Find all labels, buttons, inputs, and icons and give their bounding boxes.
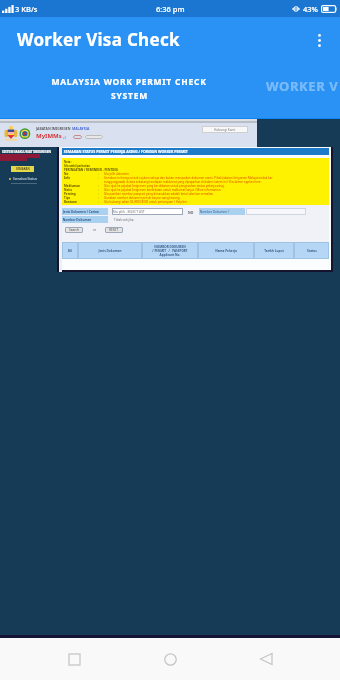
staticText: : bbox=[98, 196, 99, 200]
staticText: tanggungjawab di atas sebarang kesilapan… bbox=[104, 180, 262, 184]
staticText: Sila ambil perhatian bbox=[64, 164, 90, 168]
staticText: Sila pastikan nombor passport yang dimas… bbox=[104, 192, 214, 196]
staticText: SYSTEM bbox=[111, 90, 148, 102]
staticText: : bbox=[98, 200, 99, 204]
staticText: : bbox=[98, 172, 99, 176]
staticText: WORKER V bbox=[266, 77, 339, 95]
button[interactable]: Sila pilih - SELECT LIST bbox=[112, 208, 183, 215]
staticText: Status bbox=[307, 249, 317, 253]
staticText: 3 KB/s bbox=[15, 4, 38, 14]
button[interactable]: Search bbox=[65, 227, 83, 233]
staticText: MALAYSIA bbox=[72, 126, 90, 131]
staticText: Jenis Dokumen / Carian bbox=[62, 210, 99, 214]
staticText: v2 bbox=[62, 136, 67, 140]
staticText: Tidak sah jika bbox=[114, 218, 134, 222]
staticText: RESET bbox=[109, 228, 119, 232]
staticText: Bil bbox=[68, 249, 72, 253]
staticText: NO bbox=[188, 210, 194, 214]
staticText: 6:36 pm bbox=[156, 4, 185, 14]
staticText: Nombor Dokumen / bbox=[199, 210, 229, 214]
staticText: Jenis Dokumen bbox=[98, 249, 122, 253]
staticText: Sila pilih - SELECT LIST bbox=[112, 210, 145, 214]
staticText: Sila rujuk ke pejabat Imigresen yang ber… bbox=[104, 184, 225, 188]
staticText: Nota : bbox=[64, 160, 72, 164]
staticText: Sila rujuk ke pejabat Imigresen berdekat… bbox=[104, 188, 222, 192]
staticText: Worker Visa Check bbox=[17, 28, 180, 51]
staticText: Info bbox=[64, 176, 71, 180]
staticText: Tips bbox=[64, 196, 71, 200]
staticText: 43% bbox=[303, 4, 318, 14]
staticText: Makluman bbox=[64, 184, 81, 188]
staticText: Nama Pekerja bbox=[215, 249, 237, 253]
staticText: Notis bbox=[64, 188, 73, 192]
staticText: : bbox=[98, 188, 99, 192]
staticText: Sila hubungi talian 03-8000 8000 untuk p… bbox=[104, 200, 188, 204]
staticText: Semakan Status bbox=[13, 177, 37, 181]
staticText: Penting bbox=[64, 192, 76, 196]
staticText: : bbox=[98, 192, 99, 196]
staticText: MyIMMs bbox=[36, 132, 62, 140]
staticText: MALAYSIA WORK PERMIT CHECK bbox=[51, 76, 207, 88]
staticText: SEMAKAN bbox=[16, 167, 30, 171]
staticText: or bbox=[93, 228, 97, 232]
staticText: : bbox=[98, 176, 99, 180]
staticText: PERINGATAN / REMINDER - PENTING bbox=[64, 168, 118, 172]
button[interactable]: Home bbox=[148, 638, 192, 680]
staticText: Nombor Dokumen bbox=[62, 218, 92, 222]
button[interactable]: Back bbox=[244, 638, 288, 680]
staticText: Gunakan nombor dokumen penuh tanpa ruang… bbox=[104, 196, 181, 200]
staticText: Sila pilih dokumen bbox=[104, 172, 129, 176]
staticText: Search bbox=[69, 228, 80, 232]
staticText: Semakan ini hanya untuk rujukan sahaja d… bbox=[104, 176, 273, 180]
staticText: NOMBOR DOKUMEN / PERMIT / PASSPORT Appli… bbox=[152, 245, 188, 257]
staticText: SISTEM MAKLUMAT IMIGRESEN bbox=[2, 150, 52, 154]
staticText: JABATAN IMIGRESEN bbox=[36, 126, 72, 131]
button[interactable]: Recents bbox=[52, 638, 96, 680]
staticText: Bantuan bbox=[64, 200, 77, 204]
staticText: Tarikh Luput bbox=[264, 249, 284, 253]
staticText: No bbox=[64, 172, 69, 176]
staticText: SEMAKAN STATUS PERMIT PEKERJA ASING / FO… bbox=[62, 149, 188, 154]
button[interactable]: RESET bbox=[105, 227, 123, 233]
staticText: : bbox=[98, 184, 99, 188]
button[interactable]: More options bbox=[298, 19, 340, 61]
staticText: Hubungi Kami bbox=[214, 128, 236, 132]
